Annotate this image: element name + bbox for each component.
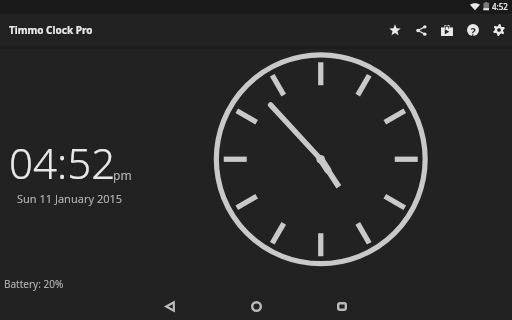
button[interactable]: Favorite <box>382 14 408 46</box>
button[interactable]: Home <box>213 293 299 320</box>
button[interactable]: Help <box>460 14 486 46</box>
staticText: Battery: 20% <box>4 277 64 291</box>
staticText: pm <box>113 167 132 183</box>
staticText: 4:52 <box>492 1 508 12</box>
staticText: 04:52 <box>9 134 116 191</box>
button[interactable]: Play Store <box>434 14 460 46</box>
button[interactable]: Share <box>408 14 434 46</box>
staticText: ? <box>470 24 476 36</box>
staticText: Timmo Clock Pro <box>9 23 93 37</box>
button[interactable]: Recents <box>299 293 385 320</box>
staticText: Sun 11 January 2015 <box>17 191 123 206</box>
button[interactable]: Back <box>127 293 213 320</box>
button[interactable]: Settings <box>486 14 512 46</box>
